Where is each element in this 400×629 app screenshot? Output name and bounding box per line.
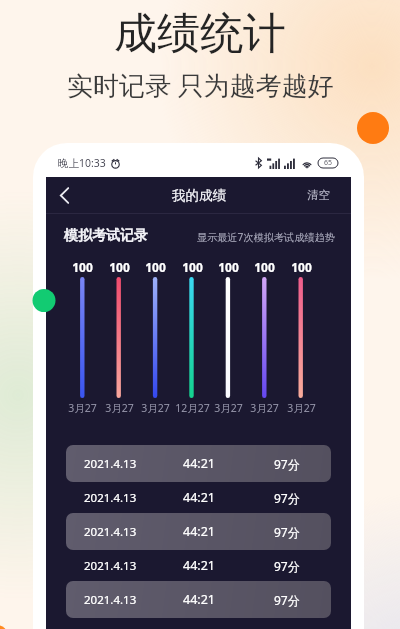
button[interactable]: 2021.4.13 xyxy=(66,550,331,581)
staticText: 清空 xyxy=(307,188,330,202)
staticText: 3月27 xyxy=(214,401,243,415)
button[interactable]: Back xyxy=(46,177,82,213)
staticText: 97分 xyxy=(274,524,300,540)
staticText: 3月27 xyxy=(105,401,134,415)
staticText: 2021.4.13 xyxy=(84,524,137,540)
staticText: 97分 xyxy=(274,592,300,608)
staticText: 100 xyxy=(109,259,130,275)
button[interactable]: 2021.4.13 xyxy=(66,445,331,482)
staticText: 模拟考试记录 xyxy=(64,227,148,245)
staticText: 65 xyxy=(324,158,333,168)
staticText: 实时记录 只为越考越好 xyxy=(67,67,334,103)
staticText: 12月27 xyxy=(175,401,210,415)
staticText: 2021.4.13 xyxy=(84,558,137,574)
staticText: 2021.4.13 xyxy=(84,592,137,608)
staticText: 100 xyxy=(254,259,275,275)
staticText: 3月27 xyxy=(141,401,170,415)
staticText: 44:21 xyxy=(183,455,215,472)
staticText: 成绩统计 xyxy=(114,7,286,61)
staticText: 我的成绩 xyxy=(172,187,226,204)
staticText: 100 xyxy=(182,259,203,275)
staticText: 97分 xyxy=(274,456,300,472)
staticText: 3月27 xyxy=(250,401,279,415)
staticText: 44:21 xyxy=(183,489,215,506)
staticText: 44:21 xyxy=(183,591,215,608)
button[interactable]: 清空 xyxy=(295,179,351,211)
button[interactable]: 2021.4.13 xyxy=(66,581,331,618)
staticText: 3月27 xyxy=(68,401,97,415)
staticText: 3月27 xyxy=(287,401,316,415)
staticText: 44:21 xyxy=(183,557,215,574)
staticText: 2021.4.13 xyxy=(84,456,137,472)
button[interactable]: 2021.4.13 xyxy=(66,482,331,513)
staticText: 100 xyxy=(72,259,93,275)
staticText: 显示最近7次模拟考试成绩趋势 xyxy=(191,230,335,244)
staticText: 100 xyxy=(291,259,312,275)
staticText: 97分 xyxy=(274,490,300,506)
staticText: 100 xyxy=(145,259,166,275)
button[interactable]: 2021.4.13 xyxy=(66,513,331,550)
staticText: 2021.4.13 xyxy=(84,490,137,506)
staticText: 97分 xyxy=(274,558,300,574)
staticText: 晚上10:33 xyxy=(58,156,106,170)
staticText: 100 xyxy=(218,259,239,275)
staticText: 44:21 xyxy=(183,523,215,540)
